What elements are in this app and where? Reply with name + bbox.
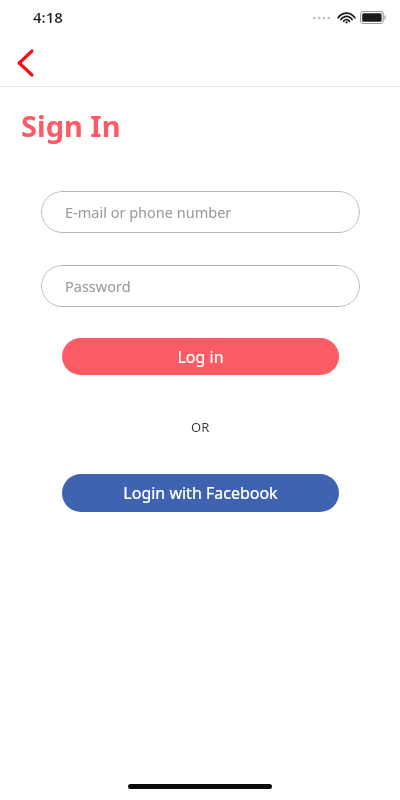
button[interactable]: Login with Facebook: [62, 474, 339, 512]
staticText: Password: [65, 276, 131, 296]
button[interactable]: Password: [41, 265, 360, 307]
button[interactable]: E-mail or phone number: [41, 191, 360, 233]
staticText: 4:18: [33, 7, 63, 27]
button[interactable]: Back: [4, 42, 46, 84]
staticText: E-mail or phone number: [65, 202, 232, 222]
staticText: Log in: [177, 346, 224, 368]
button[interactable]: Log in: [62, 338, 339, 375]
staticText: Sign In: [21, 106, 121, 145]
staticText: Login with Facebook: [123, 482, 278, 504]
staticText: OR: [191, 418, 210, 436]
